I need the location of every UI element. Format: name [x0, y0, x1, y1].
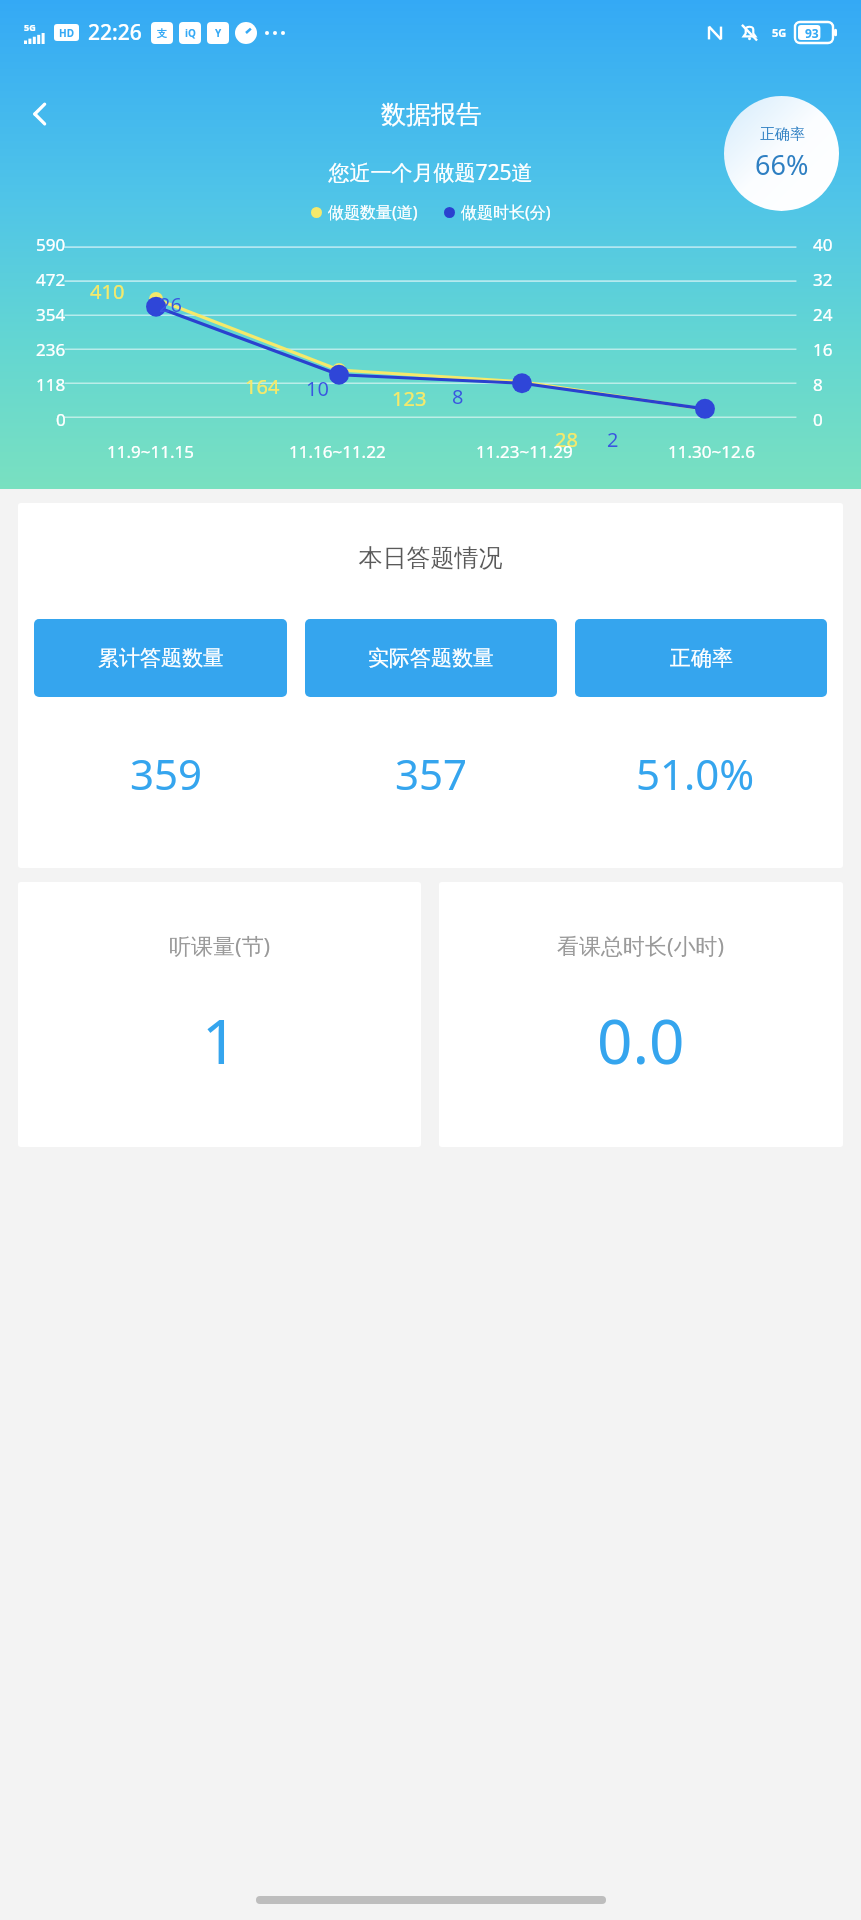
staticText: 累计答题数量 — [98, 645, 224, 671]
staticText: HD — [59, 26, 74, 40]
staticText: 正确率 — [670, 645, 733, 671]
staticText: iQ — [185, 26, 196, 40]
staticText: 2 — [607, 426, 619, 453]
staticText: 123 — [392, 385, 427, 412]
staticText: 11.9~11.15 — [107, 440, 194, 463]
staticText: 118 — [36, 373, 66, 396]
staticText: 做题数量(道) — [328, 201, 418, 223]
staticText: 0 — [56, 408, 66, 431]
staticText: 359 — [130, 745, 203, 802]
button[interactable]: 听课量(节) — [18, 882, 421, 1147]
staticText: 本日答题情况 — [18, 543, 843, 573]
staticText: 0.0 — [597, 998, 685, 1082]
staticText: 93 — [805, 25, 819, 41]
button[interactable]: 累计答题数量 — [34, 619, 287, 697]
staticText: 支 — [157, 27, 167, 40]
staticText: 8 — [452, 383, 464, 410]
staticText: 数据报告 — [381, 99, 481, 130]
staticText: 357 — [395, 745, 468, 802]
button[interactable]: 实际答题数量 — [305, 619, 557, 697]
staticText: 236 — [36, 338, 66, 361]
staticText: 做题时长(分) — [461, 201, 551, 223]
staticText: 472 — [36, 268, 66, 291]
staticText: 您近一个月做题725道 — [0, 158, 861, 187]
staticText: 24 — [813, 303, 833, 326]
staticText: 11.23~11.29 — [476, 440, 573, 463]
staticText: 590 — [36, 233, 66, 256]
staticText: 11.30~12.6 — [668, 440, 755, 463]
staticText: 22:26 — [88, 18, 142, 47]
staticText: 8 — [813, 373, 823, 396]
staticText: 10 — [306, 375, 329, 402]
staticText: 66% — [755, 146, 809, 183]
button[interactable]: 看课总时长(小时) — [439, 882, 843, 1147]
staticText: 5G — [24, 21, 36, 33]
staticText: 1 — [202, 998, 238, 1082]
staticText: 正确率 — [760, 125, 805, 144]
button[interactable]: Back — [14, 88, 66, 140]
staticText: Y — [215, 26, 222, 40]
staticText: 11.16~11.22 — [289, 440, 386, 463]
staticText: 28 — [555, 426, 578, 453]
staticText: 40 — [813, 233, 833, 256]
staticText: 看课总时长(小时) — [557, 930, 725, 960]
staticText: 164 — [245, 373, 280, 400]
button[interactable]: 正确率 — [575, 619, 827, 697]
button[interactable]: 正确率 — [724, 96, 839, 211]
staticText: 32 — [813, 268, 833, 291]
staticText: 听课量(节) — [169, 930, 271, 960]
staticText: 0 — [813, 408, 823, 431]
staticText: 16 — [813, 338, 833, 361]
staticText: 410 — [90, 278, 125, 305]
staticText: 5G — [772, 25, 787, 40]
staticText: 354 — [36, 303, 66, 326]
staticText: 实际答题数量 — [368, 645, 494, 671]
staticText: 26 — [159, 291, 182, 318]
staticText: 51.0% — [636, 745, 755, 802]
